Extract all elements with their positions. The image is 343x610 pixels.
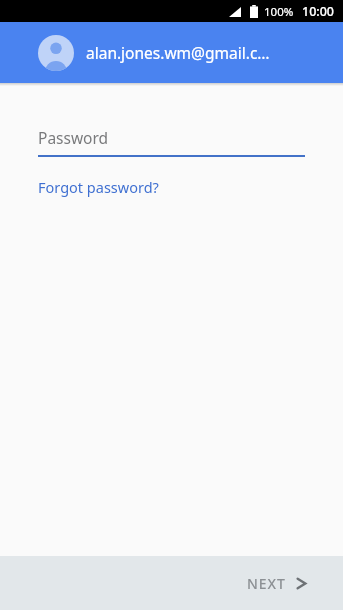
staticText: alan.jones.wm@gmail.c… bbox=[86, 42, 270, 63]
button[interactable]: Forgot password? bbox=[38, 177, 159, 197]
staticText: NEXT bbox=[247, 574, 286, 593]
staticText: Forgot password? bbox=[38, 177, 159, 197]
button[interactable]: NEXT bbox=[221, 556, 343, 610]
staticText: 10:00 bbox=[302, 3, 335, 20]
staticText: Password bbox=[38, 127, 109, 148]
other: Next bbox=[296, 576, 307, 591]
button[interactable]: alan.jones.wm@gmail.c… bbox=[0, 22, 343, 83]
staticText: 100% bbox=[264, 4, 294, 20]
button[interactable]: Password bbox=[0, 127, 343, 157]
